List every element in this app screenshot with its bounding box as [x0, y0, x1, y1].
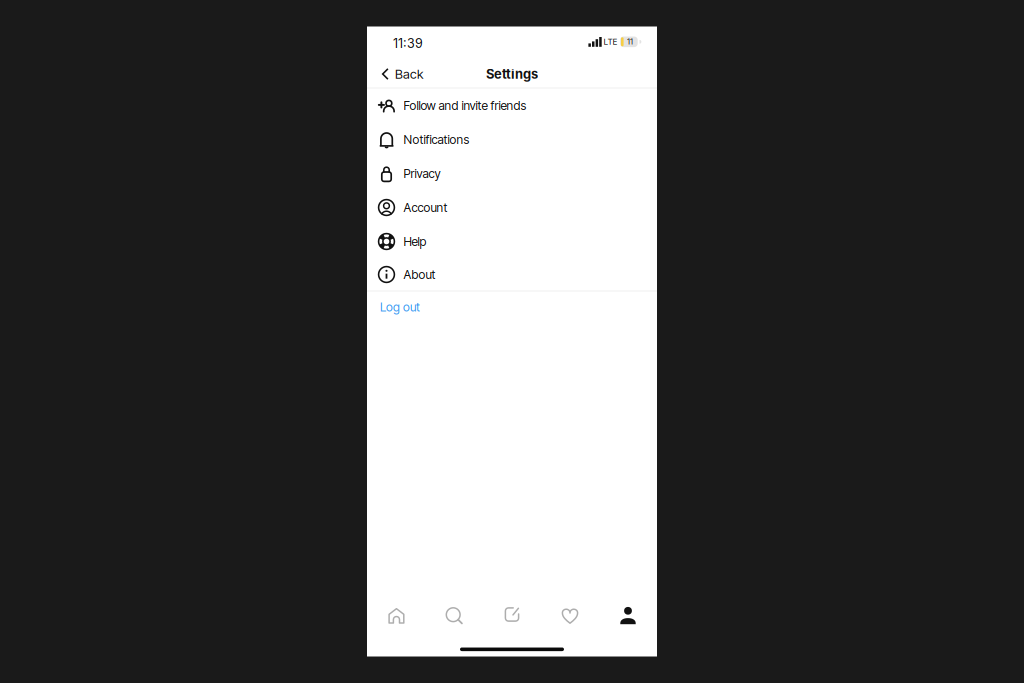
- staticText: Help: [403, 234, 426, 249]
- staticText: Account: [403, 200, 447, 215]
- button[interactable]: Account: [367, 190, 657, 224]
- staticText: Privacy: [403, 166, 440, 181]
- staticText: 11: [627, 37, 633, 46]
- staticText: Log out: [380, 300, 420, 314]
- button[interactable]: About: [367, 258, 657, 290]
- staticText: 11:39: [393, 36, 423, 51]
- staticText: LTE: [603, 37, 617, 47]
- staticText: Follow and invite friends: [403, 98, 526, 113]
- button[interactable]: Home: [367, 593, 425, 637]
- button[interactable]: Profile: [599, 593, 657, 637]
- button[interactable]: Privacy: [367, 156, 657, 190]
- staticText: Notifications: [403, 132, 469, 147]
- button[interactable]: Back: [381, 66, 423, 82]
- button[interactable]: Notifications: [367, 122, 657, 156]
- staticText: Back: [395, 66, 423, 82]
- button[interactable]: New post: [483, 593, 541, 637]
- button[interactable]: Activity: [541, 593, 599, 637]
- button[interactable]: Follow and invite friends: [367, 88, 657, 122]
- staticText: About: [403, 267, 435, 282]
- button[interactable]: Log out: [367, 291, 657, 322]
- staticText: Settings: [486, 66, 538, 82]
- button[interactable]: Help: [367, 224, 657, 258]
- button[interactable]: Search: [425, 593, 483, 637]
